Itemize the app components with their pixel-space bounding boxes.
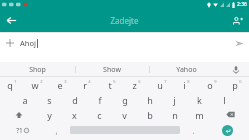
staticText: t — [108, 79, 112, 91]
button[interactable]: Symbols — [0, 122, 44, 138]
staticText: p — [232, 79, 238, 91]
staticText: e — [57, 79, 63, 91]
button[interactable]: g — [112, 92, 137, 107]
staticText: o — [207, 79, 213, 91]
button[interactable]: Back — [0, 9, 23, 32]
button[interactable]: u — [149, 77, 174, 92]
staticText: 8 — [187, 79, 190, 84]
button[interactable]: Backspace — [212, 107, 249, 122]
button[interactable]: c — [87, 107, 112, 122]
button[interactable]: Yahoo — [149, 62, 223, 77]
staticText: 2:36 — [237, 1, 247, 8]
button[interactable]: b — [137, 107, 162, 122]
staticText: m — [195, 109, 204, 121]
staticText: , — [55, 125, 58, 136]
staticText: n — [172, 109, 178, 121]
staticText: r — [83, 79, 87, 91]
button[interactable]: v — [112, 107, 137, 122]
button[interactable]: Add person — [226, 9, 249, 32]
button[interactable]: x — [62, 107, 87, 122]
staticText: Shop — [29, 65, 46, 75]
button[interactable]: h — [137, 92, 162, 107]
button[interactable]: w — [24, 77, 49, 92]
button[interactable]: . — [181, 122, 206, 138]
staticText: 0 — [239, 79, 242, 84]
button[interactable]: Voice input — [223, 62, 249, 77]
staticText: i — [183, 79, 186, 91]
staticText: Show — [103, 65, 121, 75]
staticText: . — [192, 125, 195, 136]
button[interactable]: p — [224, 77, 249, 92]
staticText: b — [147, 109, 153, 121]
button[interactable]: i — [174, 77, 199, 92]
button[interactable]: m — [187, 107, 212, 122]
staticText: z — [132, 79, 137, 91]
staticText: j — [173, 94, 176, 106]
button[interactable]: a — [12, 92, 37, 107]
staticText: 5 — [113, 79, 116, 84]
staticText: 2 — [40, 79, 43, 84]
button[interactable]: Add attachment — [0, 33, 20, 53]
staticText: ?1 — [16, 126, 23, 135]
staticText: x — [72, 109, 77, 121]
staticText: u — [157, 79, 163, 91]
staticText: s — [47, 94, 52, 106]
button[interactable]: k — [187, 92, 212, 107]
button[interactable]: Enter — [206, 122, 249, 138]
staticText: v — [122, 109, 127, 121]
staticText: 9 — [214, 79, 217, 84]
staticText: c — [97, 109, 102, 121]
button[interactable]: y — [37, 107, 62, 122]
button[interactable]: l — [212, 92, 237, 107]
button[interactable]: j — [162, 92, 187, 107]
button[interactable]: e — [49, 77, 74, 92]
staticText: 7 — [164, 79, 167, 84]
staticText: l — [223, 94, 226, 106]
button[interactable]: s — [37, 92, 62, 107]
button[interactable]: Show — [75, 62, 149, 77]
button[interactable]: Shift — [0, 107, 37, 122]
staticText: Ahoj — [20, 38, 36, 48]
button[interactable]: Shop — [0, 62, 75, 77]
staticText: a — [22, 94, 28, 106]
button[interactable]: z — [124, 77, 149, 92]
staticText: Zadejte — [23, 15, 226, 26]
button[interactable]: r — [74, 77, 99, 92]
staticText: g — [122, 94, 128, 106]
staticText: 6 — [138, 79, 141, 84]
button[interactable]: d — [62, 92, 87, 107]
staticText: q — [7, 79, 13, 91]
button[interactable]: o — [199, 77, 224, 92]
staticText: d — [72, 94, 78, 106]
button[interactable]: Send — [229, 33, 249, 53]
staticText: 3 — [64, 79, 67, 84]
button[interactable]: t — [99, 77, 124, 92]
staticText: h — [147, 94, 153, 106]
staticText: y — [47, 109, 52, 121]
button[interactable]: f — [87, 92, 112, 107]
staticText: Yahoo — [176, 65, 197, 75]
button[interactable]: n — [162, 107, 187, 122]
staticText: k — [197, 94, 202, 106]
staticText: f — [98, 94, 102, 106]
staticText: 1 — [14, 79, 17, 84]
staticText: 4 — [88, 79, 91, 84]
staticText: w — [31, 79, 39, 91]
button[interactable]: q — [0, 77, 24, 92]
button[interactable]: , — [44, 122, 69, 138]
